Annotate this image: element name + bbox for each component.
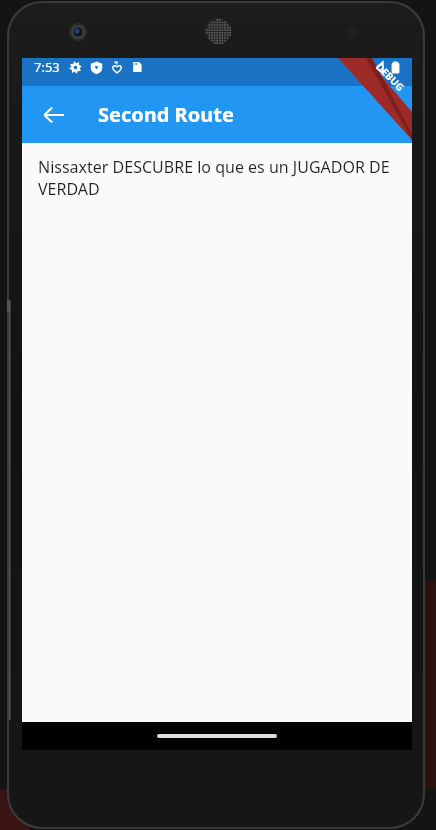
staticText: Nissaxter DESCUBRE lo que es un JUGADOR … <box>38 156 396 200</box>
staticText: DEBUG <box>373 60 408 94</box>
button[interactable]: Home <box>157 734 277 738</box>
staticText: 7:53 <box>34 58 60 76</box>
staticText: Second Route <box>98 101 234 128</box>
button[interactable]: Back <box>32 93 76 137</box>
